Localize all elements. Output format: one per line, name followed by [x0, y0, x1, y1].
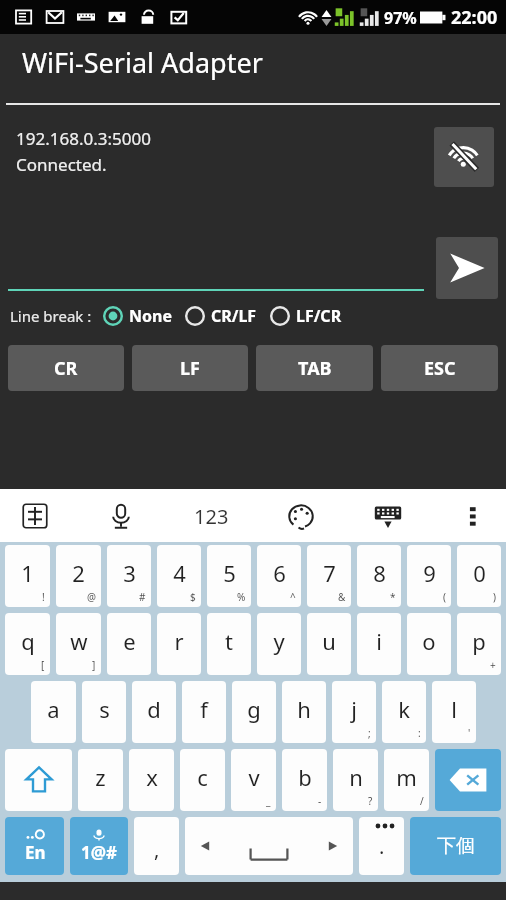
button[interactable]: ESC [381, 345, 498, 391]
button[interactable]: En [5, 817, 64, 875]
staticText: 9 [423, 558, 436, 588]
button[interactable]: 1@# [70, 817, 128, 875]
staticText: ; [368, 726, 371, 740]
button[interactable]: c [180, 749, 225, 811]
staticText: 22:00 [451, 5, 498, 30]
staticText: / [420, 794, 424, 808]
button[interactable]: Theme [284, 499, 318, 533]
staticText: 6 [273, 558, 286, 588]
button[interactable]: CR [8, 345, 124, 391]
button[interactable]: w [56, 613, 101, 675]
staticText: 2 [72, 558, 85, 588]
staticText: 7 [323, 558, 336, 588]
button[interactable]: , [134, 817, 179, 875]
button[interactable]: 6 [257, 545, 301, 607]
button[interactable]: 8 [357, 545, 401, 607]
button[interactable]: 4 [157, 545, 201, 607]
button[interactable]: b [282, 749, 327, 811]
button[interactable]: q [5, 613, 50, 675]
button[interactable]: None [102, 305, 172, 327]
staticText: j [351, 694, 357, 724]
button[interactable]: Send [436, 237, 498, 299]
button[interactable]: 0 [457, 545, 501, 607]
button[interactable]: 7 [307, 545, 351, 607]
staticText: WiFi-Serial Adapter [22, 44, 263, 81]
button[interactable]: v [231, 749, 276, 811]
button[interactable]: More options [458, 501, 488, 531]
button[interactable]: r [157, 613, 201, 675]
button[interactable]: t [207, 613, 251, 675]
button[interactable]: Backspace [435, 749, 501, 811]
staticText: ^ [290, 590, 296, 604]
button[interactable]: g [232, 681, 276, 743]
button[interactable]: TAB [256, 345, 373, 391]
button[interactable]: l [432, 681, 476, 743]
button[interactable]: p [457, 613, 501, 675]
button[interactable]: d [132, 681, 176, 743]
button[interactable]: h [282, 681, 326, 743]
button[interactable]: m [384, 749, 429, 811]
button[interactable]: Disconnect [434, 127, 494, 187]
staticText: 1 [21, 558, 34, 588]
staticText: k [398, 694, 410, 724]
staticText: y [273, 626, 285, 656]
staticText: ? [368, 794, 373, 808]
staticText: s [99, 694, 110, 724]
staticText: m [396, 762, 417, 792]
staticText: CR [54, 356, 78, 381]
button[interactable]: 下個 [410, 817, 501, 875]
staticText: v [248, 762, 260, 792]
button[interactable]: s [82, 681, 126, 743]
button[interactable]: x [129, 749, 174, 811]
staticText: En [25, 841, 46, 864]
staticText: - [318, 794, 322, 808]
button[interactable]: f [182, 681, 226, 743]
button[interactable]: j [332, 681, 376, 743]
staticText: CR/LF [211, 305, 257, 327]
staticText: Connected. [16, 153, 107, 176]
staticText: _ [266, 794, 271, 808]
staticText: % [237, 590, 246, 604]
staticText: 8 [373, 558, 386, 588]
button[interactable]: z [78, 749, 123, 811]
button[interactable]: CR/LF [184, 305, 257, 327]
staticText: TAB [298, 356, 332, 381]
button[interactable]: 9 [407, 545, 451, 607]
button[interactable]: k [382, 681, 426, 743]
button[interactable]: Hide keyboard [370, 498, 406, 534]
staticText: i [376, 626, 382, 656]
button[interactable]: Shift [5, 749, 72, 811]
button[interactable]: . [359, 817, 404, 875]
staticText: @ [87, 590, 96, 604]
staticText: 下個 [437, 834, 475, 858]
button[interactable]: Voice input [104, 499, 138, 533]
button[interactable]: a [31, 681, 76, 743]
button[interactable]: Space [185, 817, 353, 875]
staticText: None [129, 305, 172, 327]
button[interactable]: 2 [56, 545, 101, 607]
button[interactable]: 5 [207, 545, 251, 607]
button[interactable]: 123 [190, 495, 232, 537]
staticText: * [390, 590, 396, 604]
button[interactable]: i [357, 613, 401, 675]
staticText: l [451, 694, 457, 724]
staticText: + [490, 658, 496, 672]
button[interactable]: Input method [18, 499, 52, 533]
staticText: , [154, 836, 160, 863]
button[interactable]: o [407, 613, 451, 675]
button[interactable]: 3 [107, 545, 151, 607]
staticText: [ [41, 658, 45, 672]
button[interactable]: e [107, 613, 151, 675]
button[interactable]: LF [132, 345, 248, 391]
button[interactable]: n [333, 749, 378, 811]
staticText: x [146, 762, 158, 792]
button[interactable]: 1 [5, 545, 50, 607]
staticText: Line break : [10, 306, 92, 326]
staticText: b [298, 762, 312, 792]
staticText: ] [92, 658, 96, 672]
button[interactable]: y [257, 613, 301, 675]
button[interactable]: u [307, 613, 351, 675]
staticText: : [418, 726, 421, 740]
staticText: o [422, 626, 436, 656]
button[interactable]: LF/CR [269, 305, 342, 327]
